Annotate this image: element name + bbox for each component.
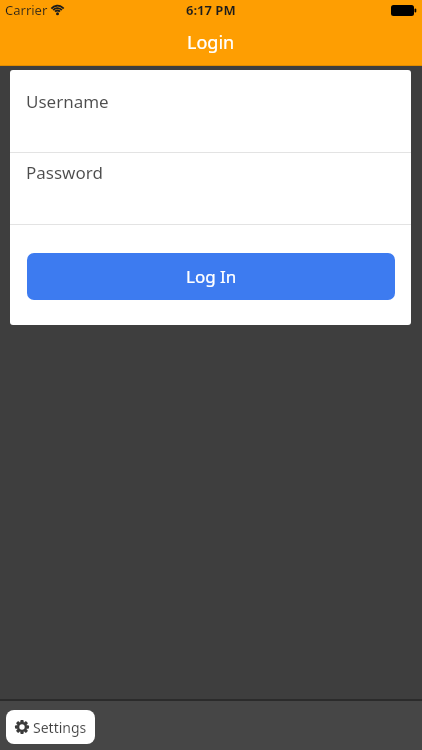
staticText: Settings (33, 718, 87, 737)
button[interactable]: Log In (27, 253, 395, 300)
staticText: Login (187, 30, 235, 55)
button[interactable]: Password (10, 153, 411, 224)
staticText: Log In (186, 265, 237, 288)
button[interactable]: Settings (6, 710, 95, 744)
staticText: Password (26, 161, 103, 184)
staticText: Username (26, 90, 109, 113)
button[interactable]: Username (10, 70, 411, 152)
staticText: Carrier (5, 1, 48, 19)
staticText: 6:17 PM (186, 1, 236, 19)
